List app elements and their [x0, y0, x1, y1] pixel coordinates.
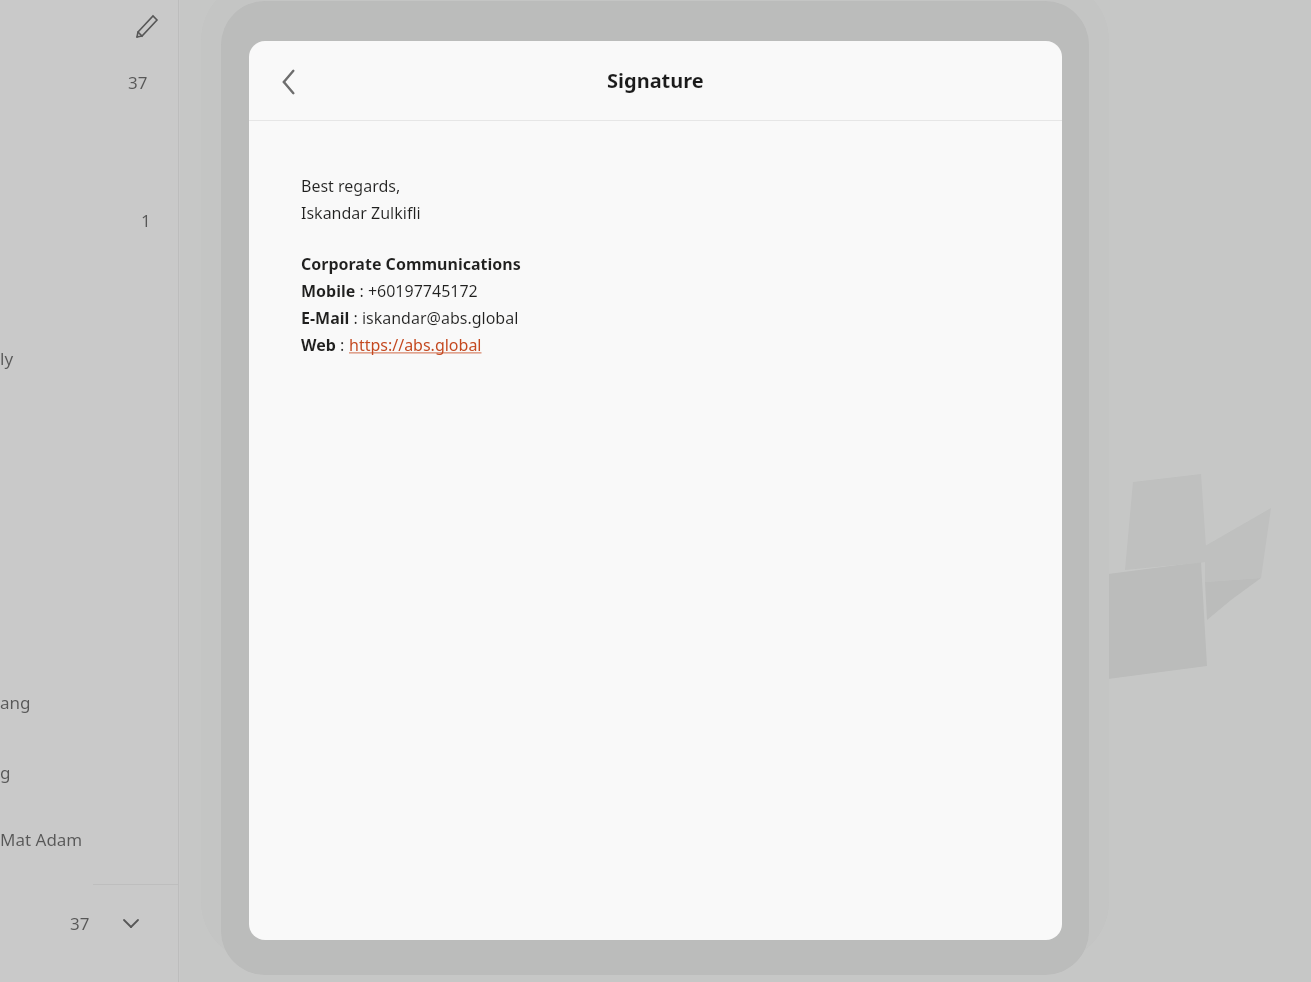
staticText: https://abs.global	[349, 334, 482, 356]
staticText: Mobile : +60197745172	[301, 280, 478, 302]
button[interactable]: https://abs.global	[349, 334, 482, 356]
button[interactable]: 37	[70, 903, 170, 943]
staticText: E-Mail : iskandar@abs.global	[301, 307, 519, 329]
staticText: Web :	[301, 334, 349, 356]
staticText: ang	[0, 691, 31, 714]
staticText: Iskandar Zulkifli	[301, 202, 421, 224]
staticText: Best regards,	[301, 175, 401, 197]
button[interactable]: Back	[268, 60, 312, 104]
staticText: 1	[141, 209, 151, 232]
staticText: g	[0, 761, 11, 784]
button[interactable]: Compose	[126, 4, 166, 44]
staticText: Mat Adam	[0, 828, 83, 851]
staticText: Corporate Communications	[301, 253, 521, 275]
staticText: 37	[128, 71, 148, 94]
staticText: Signature	[607, 67, 704, 94]
staticText: 37	[70, 912, 90, 935]
staticText: ly	[0, 347, 14, 370]
